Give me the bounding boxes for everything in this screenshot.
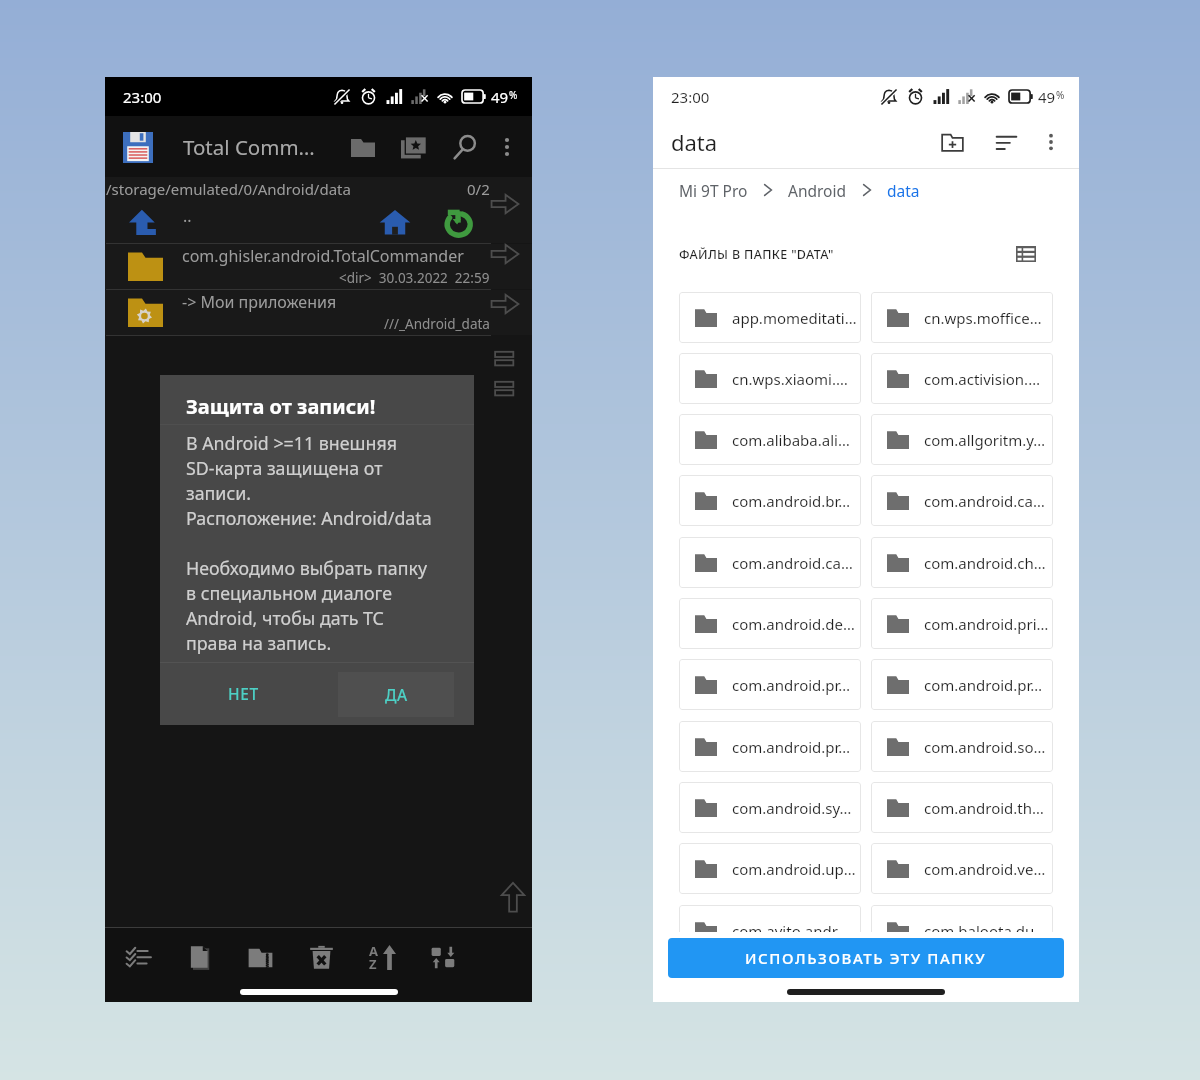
button[interactable]: data: [887, 180, 920, 201]
button[interactable]: com.android.so…: [871, 721, 1053, 772]
staticText: ФАЙЛЫ В ПАПКЕ "DATA": [679, 246, 834, 263]
button[interactable]: Zip: [230, 928, 290, 1002]
staticText: ..: [183, 205, 192, 227]
button[interactable]: Up one level: [123, 201, 163, 243]
staticText: ДА: [385, 684, 408, 705]
button[interactable]: ИСПОЛЬЗОВАТЬ ЭТУ ПАПКУ: [668, 938, 1064, 978]
staticText: app.momeditati…: [732, 308, 857, 328]
staticText: com.android.up…: [732, 859, 856, 879]
button[interactable]: ДА: [338, 672, 454, 717]
staticText: com.android.pr…: [924, 675, 1043, 695]
button[interactable]: Folders: [342, 126, 384, 168]
button[interactable]: com.android.pr…: [679, 721, 861, 772]
staticText: com.android.ca…: [732, 553, 853, 573]
staticText: /storage/emulated/0/Android/data: [106, 179, 351, 199]
staticText: 0/2: [467, 179, 490, 199]
staticText: com.android.de…: [732, 614, 855, 634]
staticText: com.android.ch…: [924, 553, 1046, 573]
button[interactable]: com.activision.…: [871, 353, 1053, 404]
button[interactable]: More options: [488, 128, 526, 166]
button[interactable]: cn.wps.xiaomi.…: [679, 353, 861, 404]
staticText: 23:00: [671, 87, 710, 107]
button[interactable]: -> Мои приложения: [105, 290, 532, 335]
staticText: com.alibaba.ali…: [732, 430, 850, 450]
button[interactable]: New folder: [929, 119, 975, 165]
button[interactable]: Switch panel: [486, 287, 524, 321]
button[interactable]: НЕТ: [204, 670, 282, 716]
staticText: ИСПОЛЬЗОВАТЬ ЭТУ ПАПКУ: [745, 948, 987, 968]
button[interactable]: com.baloota.du: [871, 905, 1053, 956]
staticText: Защита от записи!: [186, 393, 376, 420]
staticText: com.android.th…: [924, 798, 1044, 818]
button[interactable]: Delete: [291, 928, 351, 1002]
staticText: com.allgoritm.y…: [924, 430, 1046, 450]
staticText: -> Мои приложения: [182, 291, 337, 313]
button[interactable]: Panel layout: [486, 373, 524, 405]
button[interactable]: Search: [444, 126, 486, 168]
staticText: com.ghisler.android.TotalCommander: [182, 245, 464, 267]
button[interactable]: New file: [169, 928, 229, 1002]
button[interactable]: Select all: [108, 928, 168, 1002]
button[interactable]: com.android.pri…: [871, 598, 1053, 649]
staticText: com.android.pr…: [732, 675, 851, 695]
button[interactable]: com.android.ca…: [679, 537, 861, 588]
button[interactable]: com.allgoritm.y…: [871, 414, 1053, 465]
staticText: ///_Android_data: [384, 315, 490, 333]
staticText: com.avito.andr: [732, 921, 838, 941]
button[interactable]: com.android.ca…: [871, 475, 1053, 526]
staticText: com.android.sy…: [732, 798, 852, 818]
staticText: com.android.so…: [924, 737, 1046, 757]
button[interactable]: Copy move: [413, 928, 473, 1002]
staticText: com.baloota.du: [924, 921, 1035, 941]
staticText: В Android >=11 внешняя SD-карта защищена…: [186, 431, 432, 655]
button[interactable]: app.momeditati…: [679, 292, 861, 343]
button[interactable]: com.android.ch…: [871, 537, 1053, 588]
staticText: Total Comm…: [183, 133, 315, 161]
button[interactable]: com.android.pr…: [679, 659, 861, 710]
staticText: 23:00: [123, 87, 162, 107]
staticText: <dir> 30.03.2022 22:59: [339, 269, 490, 287]
button[interactable]: Scroll to top: [495, 875, 531, 919]
button[interactable]: Bookmarks: [393, 126, 435, 168]
button[interactable]: More options: [1031, 122, 1071, 162]
button[interactable]: App menu: [117, 126, 159, 168]
staticText: cn.wps.moffice…: [924, 308, 1042, 328]
button[interactable]: com.android.th…: [871, 782, 1053, 833]
staticText: com.android.pri…: [924, 614, 1049, 634]
staticText: com.android.pr…: [732, 737, 851, 757]
button[interactable]: com.avito.andr: [679, 905, 861, 956]
button[interactable]: Android: [788, 180, 847, 201]
staticText: НЕТ: [228, 683, 259, 704]
button[interactable]: Panel layout: [486, 343, 524, 375]
button[interactable]: com.android.up…: [679, 843, 861, 894]
button[interactable]: Up one level: [105, 201, 532, 243]
staticText: com.activision.…: [924, 369, 1040, 389]
staticText: Z: [369, 955, 377, 973]
button[interactable]: com.android.br…: [679, 475, 861, 526]
button[interactable]: Switch panel: [486, 237, 524, 271]
staticText: com.android.br…: [732, 491, 851, 511]
button[interactable]: Mi 9T Pro: [679, 180, 748, 201]
button[interactable]: Home: [375, 201, 415, 243]
staticText: %: [509, 88, 518, 102]
button[interactable]: com.android.de…: [679, 598, 861, 649]
button[interactable]: com.ghisler.android.TotalCommander: [105, 244, 532, 289]
staticText: com.android.ca…: [924, 491, 1045, 511]
button[interactable]: Switch panel: [486, 187, 524, 221]
button[interactable]: Sort: [983, 119, 1029, 165]
button[interactable]: Sort: [352, 928, 412, 1002]
button[interactable]: com.android.sy…: [679, 782, 861, 833]
button[interactable]: com.android.ve…: [871, 843, 1053, 894]
button[interactable]: com.alibaba.ali…: [679, 414, 861, 465]
button[interactable]: cn.wps.moffice…: [871, 292, 1053, 343]
staticText: A: [369, 942, 378, 960]
button[interactable]: List view: [1007, 235, 1045, 273]
staticText: cn.wps.xiaomi.…: [732, 369, 848, 389]
staticText: 49: [491, 87, 509, 107]
staticText: 49: [1038, 87, 1056, 107]
staticText: data: [671, 127, 718, 157]
button[interactable]: com.android.pr…: [871, 659, 1053, 710]
staticText: com.android.ve…: [924, 859, 1046, 879]
button[interactable]: Refresh: [439, 201, 479, 243]
staticText: %: [1056, 88, 1065, 102]
